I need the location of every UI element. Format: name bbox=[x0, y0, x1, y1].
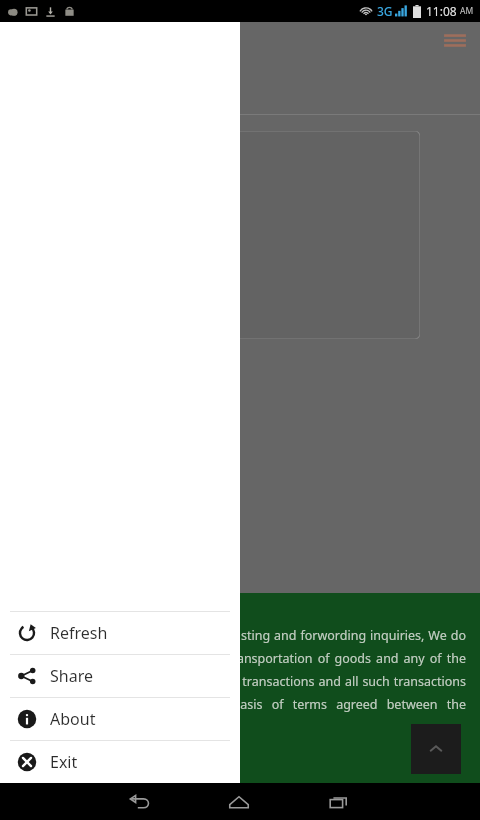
staticText: 11:08 bbox=[426, 3, 457, 19]
staticText: About bbox=[50, 708, 96, 730]
button[interactable]: Home bbox=[189, 783, 289, 820]
button[interactable]: About bbox=[0, 698, 240, 740]
button[interactable]: Back bbox=[90, 783, 189, 820]
button[interactable]: Share bbox=[0, 655, 240, 697]
staticText: Refresh bbox=[50, 622, 108, 644]
button[interactable]: Open navigation menu bbox=[442, 27, 468, 53]
button[interactable]: Refresh bbox=[0, 612, 240, 654]
button[interactable]: Scroll to top bbox=[411, 724, 461, 774]
staticText: 3G bbox=[377, 3, 393, 19]
staticText: Share bbox=[50, 665, 93, 687]
staticText: Exit bbox=[50, 751, 78, 773]
button[interactable]: Recent apps bbox=[289, 783, 389, 820]
button[interactable]: Exit bbox=[0, 741, 240, 783]
staticText: Sashi Logistics is only a platform for l… bbox=[16, 627, 466, 736]
staticText: AM bbox=[460, 5, 474, 17]
